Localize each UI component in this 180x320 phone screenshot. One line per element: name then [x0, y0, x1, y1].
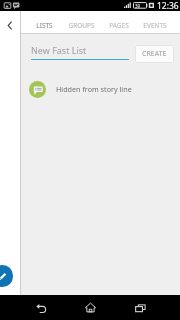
staticText: GROUPS: [68, 21, 95, 30]
button[interactable]: CREATE: [135, 45, 174, 63]
staticText: 39: [135, 3, 141, 9]
button[interactable]: Home: [77, 295, 103, 320]
button[interactable]: Navigate up: [0, 11, 21, 39]
staticText: EVENTS: [143, 21, 167, 30]
staticText: LISTS: [36, 21, 53, 30]
button[interactable]: Compose new post: [0, 265, 13, 287]
button[interactable]: EVENTS: [137, 11, 173, 33]
button[interactable]: GROUPS: [62, 11, 100, 33]
button[interactable]: Back: [28, 295, 54, 320]
staticText: CREATE: [142, 49, 167, 59]
button[interactable]: New Fast List: [31, 44, 129, 60]
button[interactable]: Recent apps: [127, 295, 153, 320]
staticText: 12:36: [157, 0, 179, 11]
button[interactable]: Hidden from story line: [21, 77, 180, 101]
staticText: PAGES: [109, 21, 129, 30]
button[interactable]: LISTS: [28, 11, 61, 33]
staticText: New Fast List: [31, 44, 87, 56]
staticText: Hidden from story line: [56, 84, 132, 94]
button[interactable]: PAGES: [100, 11, 138, 33]
